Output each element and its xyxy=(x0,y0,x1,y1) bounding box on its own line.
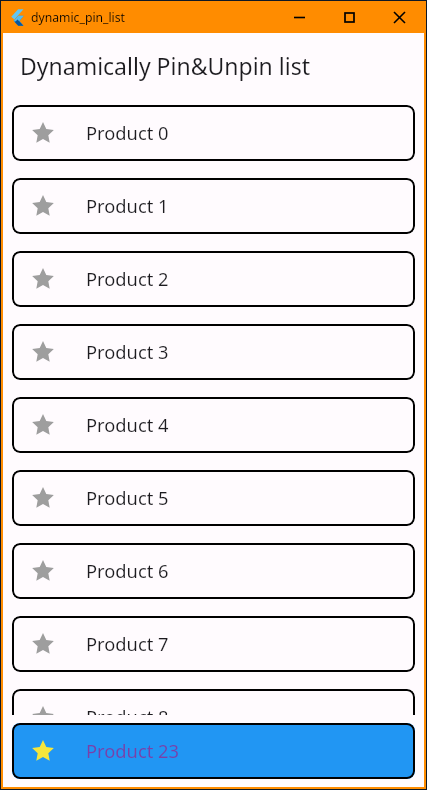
button[interactable]: Product 7 xyxy=(12,616,415,672)
button[interactable]: Product 2 xyxy=(12,251,415,307)
staticText: Product 3 xyxy=(86,339,169,364)
staticText: Product 2 xyxy=(86,266,169,291)
staticText: Dynamically Pin&Unpin list xyxy=(20,50,310,81)
staticText: Product 23 xyxy=(86,738,179,763)
staticText: Product 7 xyxy=(86,631,169,656)
button[interactable]: Close xyxy=(374,1,424,33)
button[interactable]: Product 23 xyxy=(12,723,415,779)
staticText: Product 8 xyxy=(86,704,169,715)
button[interactable]: Product 6 xyxy=(12,543,415,599)
button[interactable]: Minimize xyxy=(274,1,324,33)
staticText: Product 4 xyxy=(86,412,169,437)
button[interactable]: Product 1 xyxy=(12,178,415,234)
button[interactable]: Product 8 xyxy=(12,689,415,715)
button[interactable]: Product 0 xyxy=(12,105,415,161)
staticText: Product 1 xyxy=(86,193,169,218)
button[interactable]: Product 5 xyxy=(12,470,415,526)
staticText: dynamic_pin_list xyxy=(31,9,125,26)
staticText: Product 0 xyxy=(86,120,169,145)
staticText: Product 6 xyxy=(86,558,169,583)
staticText: Product 5 xyxy=(86,485,169,510)
button[interactable]: Maximize xyxy=(324,1,374,33)
button[interactable]: Product 4 xyxy=(12,397,415,453)
button[interactable]: Product 3 xyxy=(12,324,415,380)
